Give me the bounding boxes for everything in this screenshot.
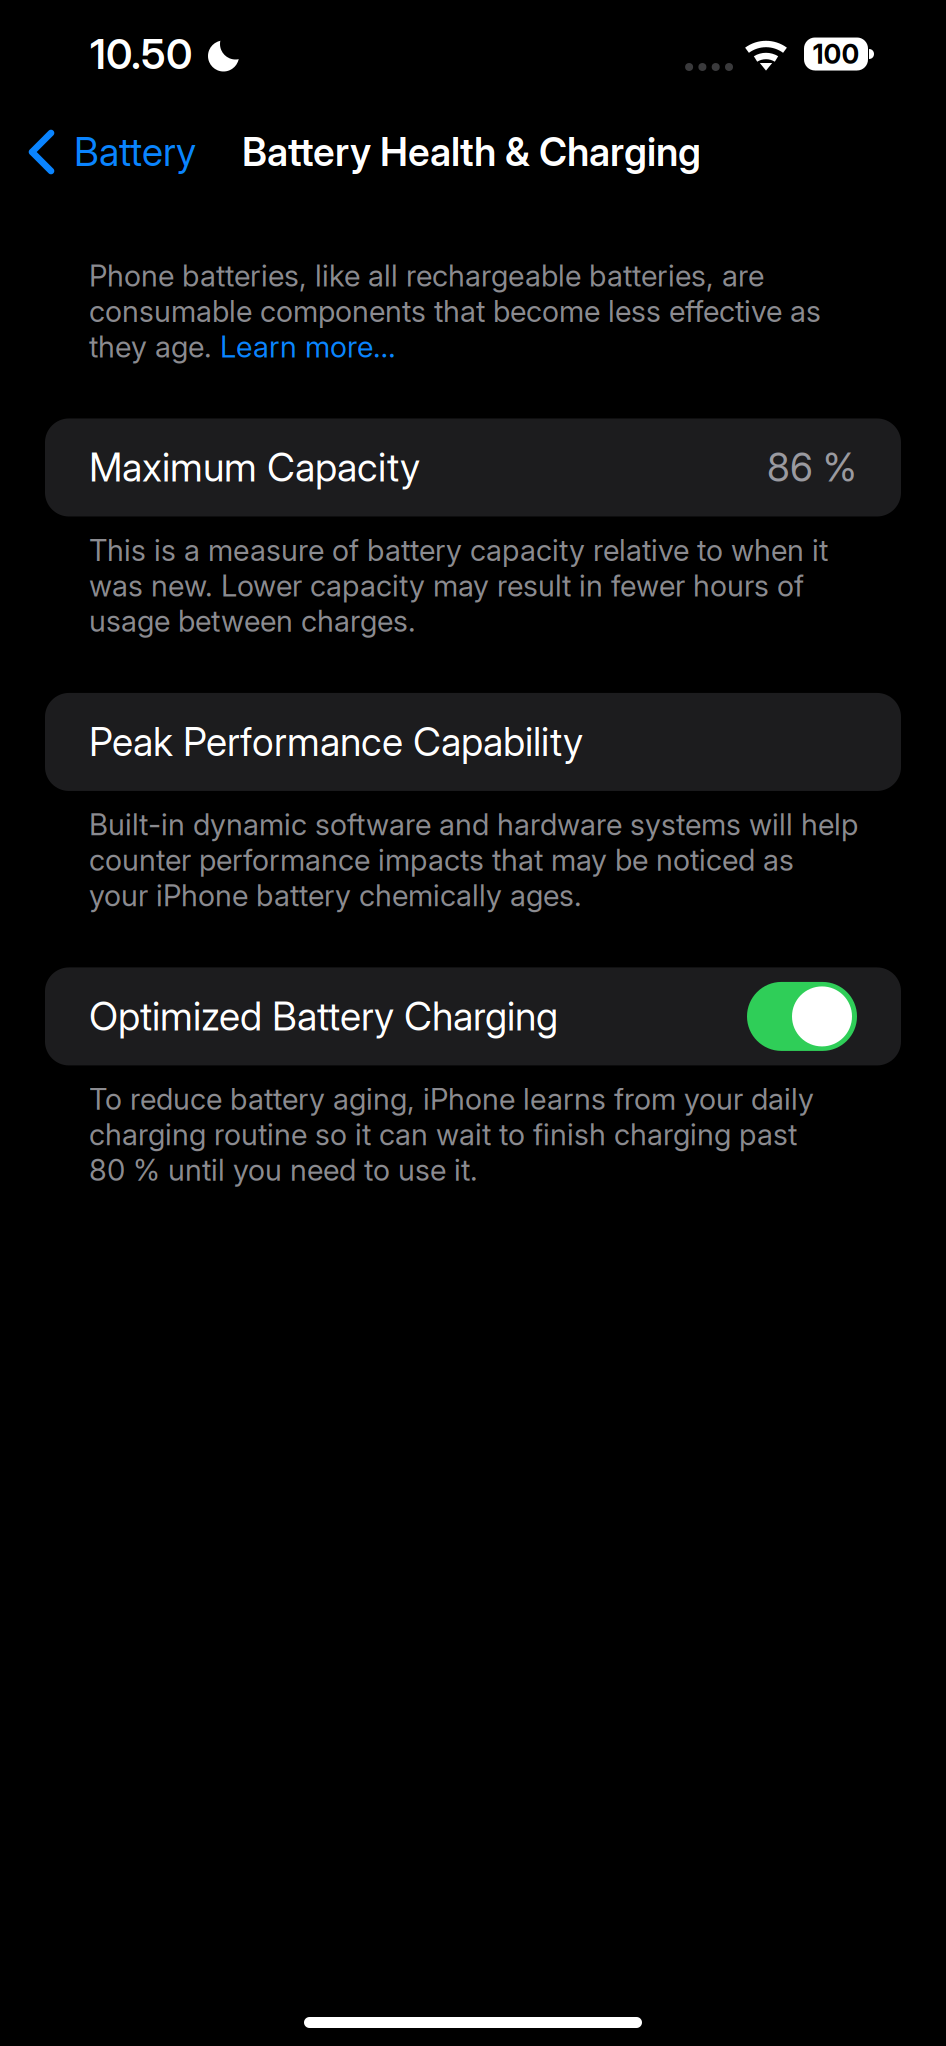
staticText: they age. xyxy=(89,329,220,364)
staticText: Optimized Battery Charging xyxy=(89,993,558,1040)
staticText: Battery Health & Charging xyxy=(242,129,701,175)
button[interactable]: Optimized Battery Charging xyxy=(0,967,946,1065)
staticText: 86 % xyxy=(767,444,857,491)
button[interactable]: Maximum Capacity xyxy=(0,418,946,516)
staticText: Maximum Capacity xyxy=(89,444,420,491)
staticText: To reduce battery aging, iPhone learns f… xyxy=(89,1081,814,1117)
staticText: your iPhone battery chemically ages. xyxy=(89,878,582,913)
staticText: consumable components that become less e… xyxy=(89,293,821,329)
staticText: 80 % until you need to use it. xyxy=(89,1152,478,1188)
button[interactable]: Battery xyxy=(0,108,242,196)
button[interactable]: Learn more… xyxy=(220,329,396,364)
staticText: 100 xyxy=(812,38,859,70)
staticText: charging routine so it can wait to finis… xyxy=(89,1117,797,1152)
staticText: 10.50 xyxy=(90,29,192,79)
staticText: Phone batteries, like all rechargeable b… xyxy=(89,258,764,293)
staticText: Battery xyxy=(74,129,196,175)
staticText: Learn more… xyxy=(220,329,396,364)
staticText: Peak Performance Capability xyxy=(89,719,583,765)
staticText: usage between charges. xyxy=(89,603,416,639)
staticText: counter performance impacts that may be … xyxy=(89,842,794,878)
staticText: was new. Lower capacity may result in fe… xyxy=(89,568,804,603)
button[interactable]: Peak Performance Capability xyxy=(0,693,946,791)
staticText: Built-in dynamic software and hardware s… xyxy=(89,807,858,842)
staticText: This is a measure of battery capacity re… xyxy=(89,532,828,568)
